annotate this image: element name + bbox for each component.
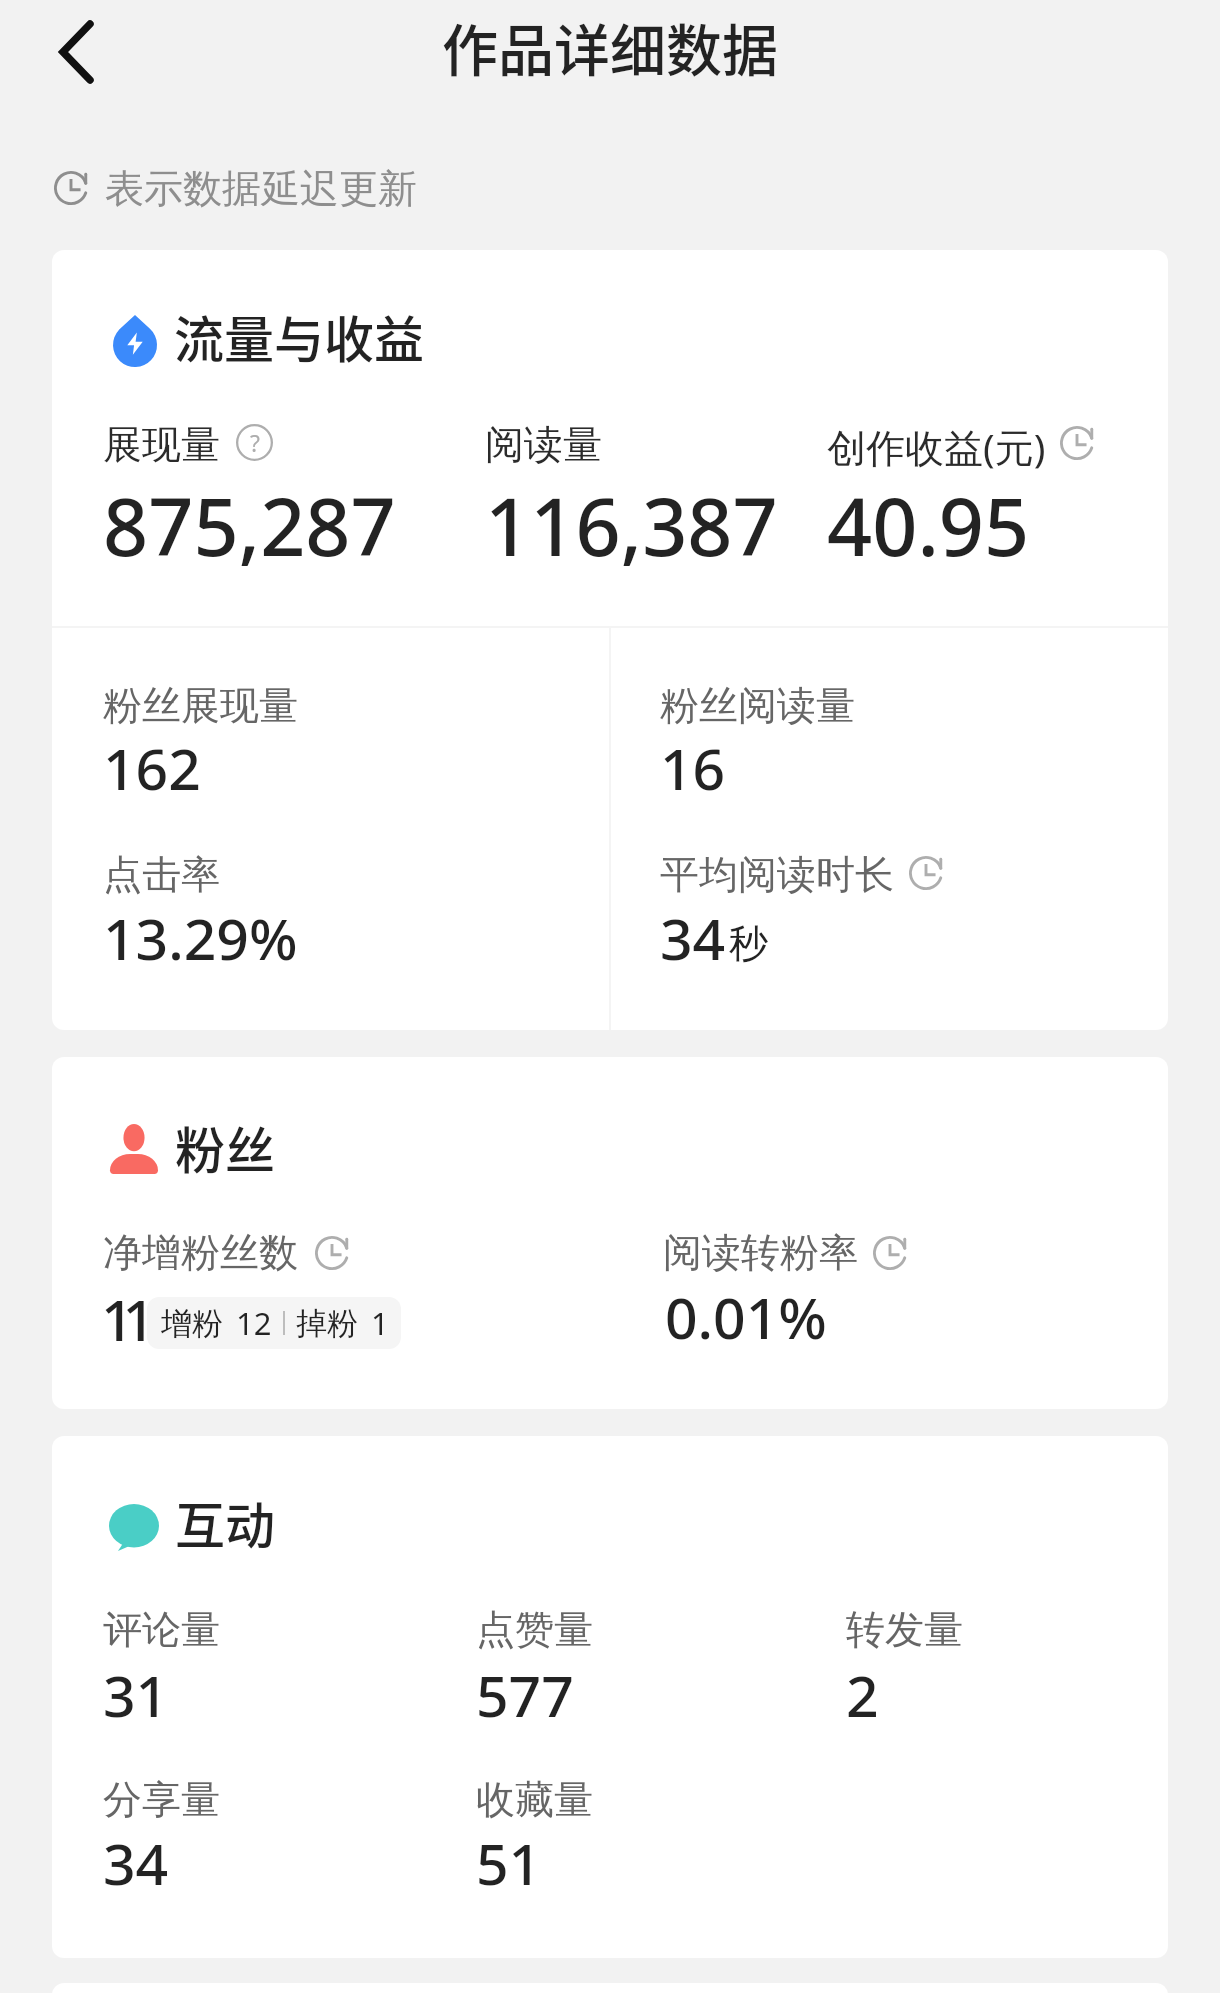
staticText: 12 <box>236 1302 272 1344</box>
staticText: 粉丝阅读量 <box>660 681 855 730</box>
staticText: 作品详细数据 <box>0 6 1220 87</box>
staticText: 162 <box>103 729 201 807</box>
staticText: 表示数据延迟更新 <box>105 164 417 213</box>
staticText: 16 <box>660 729 726 807</box>
staticText: 增粉 <box>161 1304 223 1343</box>
staticText: 34 <box>103 1824 169 1902</box>
staticText: 评论量 <box>103 1605 220 1654</box>
button[interactable]: 互动 <box>52 1436 1168 1958</box>
staticText: 分享量 <box>103 1775 220 1824</box>
staticText: 875,287 <box>103 472 396 580</box>
button[interactable]: 返回 <box>24 0 128 104</box>
staticText: 点击率 <box>103 850 220 899</box>
staticText: 51 <box>476 1824 542 1902</box>
staticText: 转发量 <box>846 1605 963 1654</box>
staticText: 展现量 <box>103 420 220 469</box>
staticText: 掉粉 <box>296 1304 358 1343</box>
staticText: 平均阅读时长 <box>660 850 894 899</box>
button[interactable]: 说明 <box>236 424 273 461</box>
staticText: 31 <box>103 1656 169 1734</box>
staticText: 秒 <box>729 919 768 968</box>
staticText: 13.29% <box>103 899 298 977</box>
staticText: 粉丝 <box>175 1111 275 1183</box>
staticText: 阅读转粉率 <box>663 1228 858 1277</box>
staticText: 互动 <box>175 1486 275 1558</box>
staticText: 粉丝展现量 <box>103 681 298 730</box>
staticText: 阅读量 <box>485 420 602 469</box>
staticText: 点赞量 <box>476 1605 593 1654</box>
staticText: 收藏量 <box>476 1775 593 1824</box>
staticText: 116,387 <box>485 472 778 580</box>
button[interactable]: 流量与收益 <box>52 250 1168 1030</box>
staticText: 0.01% <box>665 1278 827 1356</box>
staticText: 2 <box>846 1656 879 1734</box>
staticText: ? <box>250 427 260 458</box>
staticText: 净增粉丝数 <box>103 1228 298 1277</box>
staticText: 流量与收益 <box>174 300 424 372</box>
staticText: 577 <box>476 1656 574 1734</box>
staticText: 34 <box>660 899 726 977</box>
button[interactable]: 粉丝 <box>52 1057 1168 1409</box>
staticText: 创作收益(元) <box>827 420 1046 473</box>
staticText: 40.95 <box>827 472 1030 580</box>
staticText: 1 <box>371 1302 389 1344</box>
staticText: 11 <box>101 1280 145 1358</box>
